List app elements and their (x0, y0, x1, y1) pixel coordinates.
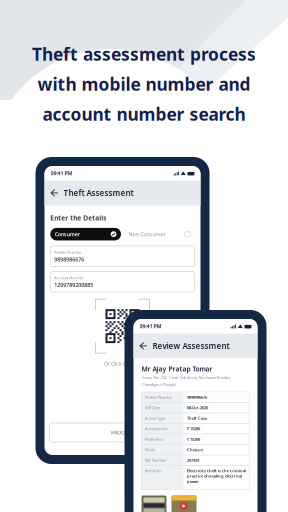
staticText: Theft Case (187, 416, 207, 421)
staticText: Or Click to scan (104, 360, 141, 367)
staticText: with mobile number and (37, 72, 250, 95)
staticText: 1209789200885 (54, 281, 93, 289)
staticText: Non-Consumer (128, 231, 165, 238)
staticText: Action Type (145, 416, 165, 421)
staticText: 09:41 PM (139, 323, 161, 330)
staticText: ATR Date (145, 405, 160, 410)
button[interactable]: Theft Assessment (44, 180, 200, 205)
staticText: Mode (145, 447, 155, 452)
staticText: Consumer (55, 231, 80, 238)
staticText: 09:41 PM (50, 170, 72, 177)
button[interactable]: Consumer (50, 228, 121, 240)
button[interactable]: Review Assessment (133, 333, 257, 358)
staticText: Theft Assessment (63, 188, 133, 198)
staticText: Enter the Details (50, 213, 106, 222)
staticText: ₹ 15200 (187, 437, 200, 442)
staticText: Ref. Number (145, 458, 167, 463)
staticText: Assessment (145, 426, 167, 431)
staticText: House No. 232, Cantt. Side Area, Rambaol… (141, 375, 230, 380)
staticText: 9898986676 (187, 395, 207, 400)
staticText: Theft assessment process (32, 42, 256, 65)
staticText: Remarks (145, 468, 161, 473)
staticText: account number search (42, 102, 245, 125)
staticText: Mobile Number (145, 395, 173, 400)
staticText: Mr Ajay Pratap Tomar (141, 364, 212, 373)
staticText: 9898986676 (54, 256, 84, 263)
staticText: Account Number (54, 275, 84, 280)
staticText: ₹ 15200 (187, 426, 200, 431)
staticText: 297929 (187, 458, 199, 463)
button[interactable]: Non-Consumer (124, 228, 195, 240)
button[interactable]: PROCEED (49, 423, 195, 442)
staticText: Electricity theft is the criminal practi… (187, 468, 246, 484)
staticText: Cheque (187, 447, 203, 452)
staticText: Mobile Number (54, 250, 82, 255)
staticText: Chandigarh (Punjab) (141, 382, 175, 387)
staticText: 08-Oct-2020 (187, 405, 208, 410)
staticText: Review Assessment (152, 341, 229, 351)
staticText: PROCEED (111, 429, 134, 436)
staticText: Realisation (145, 437, 163, 442)
